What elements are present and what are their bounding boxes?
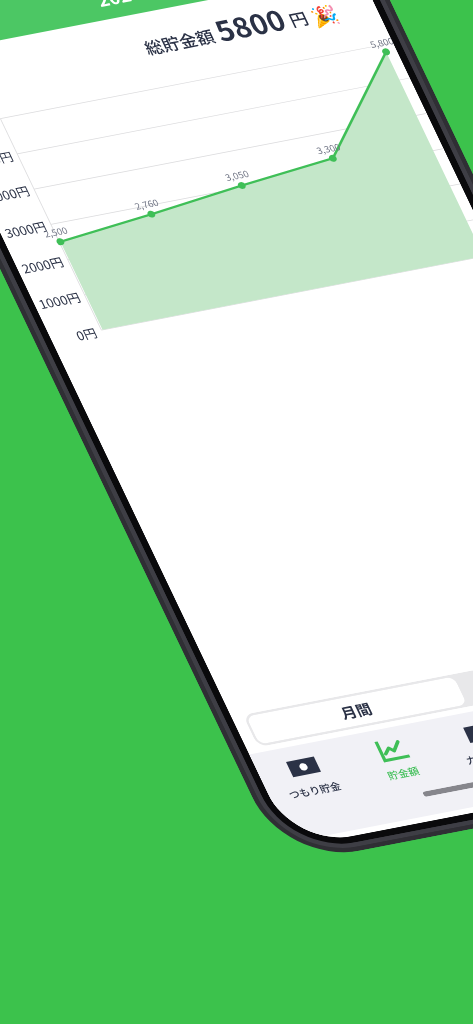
staticText: 2,760 <box>132 196 161 213</box>
staticText: 2024年 <box>91 0 164 11</box>
button[interactable]: 年間 <box>454 636 473 704</box>
staticText: 3,050 <box>223 167 251 184</box>
staticText: 5800 <box>207 0 293 49</box>
button[interactable]: 月間 <box>246 676 467 745</box>
staticText: 0円 <box>72 323 101 344</box>
staticText: 5,800 <box>368 35 395 51</box>
staticText: 円 <box>281 5 316 33</box>
button[interactable]: 貯金額 <box>341 728 451 789</box>
staticText: 総貯金額 <box>140 23 223 60</box>
staticText: 4000円 <box>0 181 33 206</box>
staticText: 🎉 <box>307 2 343 29</box>
staticText: 2,500 <box>41 224 70 241</box>
staticText: 1000円 <box>35 288 84 312</box>
button[interactable]: つもり貯金 <box>253 745 362 806</box>
staticText: つもり貯金 <box>285 778 344 802</box>
staticText: 3000円 <box>1 217 50 241</box>
staticText: 3,300 <box>314 140 343 157</box>
button[interactable]: カレンダー <box>430 711 473 771</box>
staticText: 5000円 <box>0 147 17 171</box>
staticText: 2000円 <box>18 252 67 277</box>
staticText: カレンダー <box>462 744 473 768</box>
staticText: 貯金額 <box>384 763 422 783</box>
staticText: 月間 <box>336 698 377 723</box>
